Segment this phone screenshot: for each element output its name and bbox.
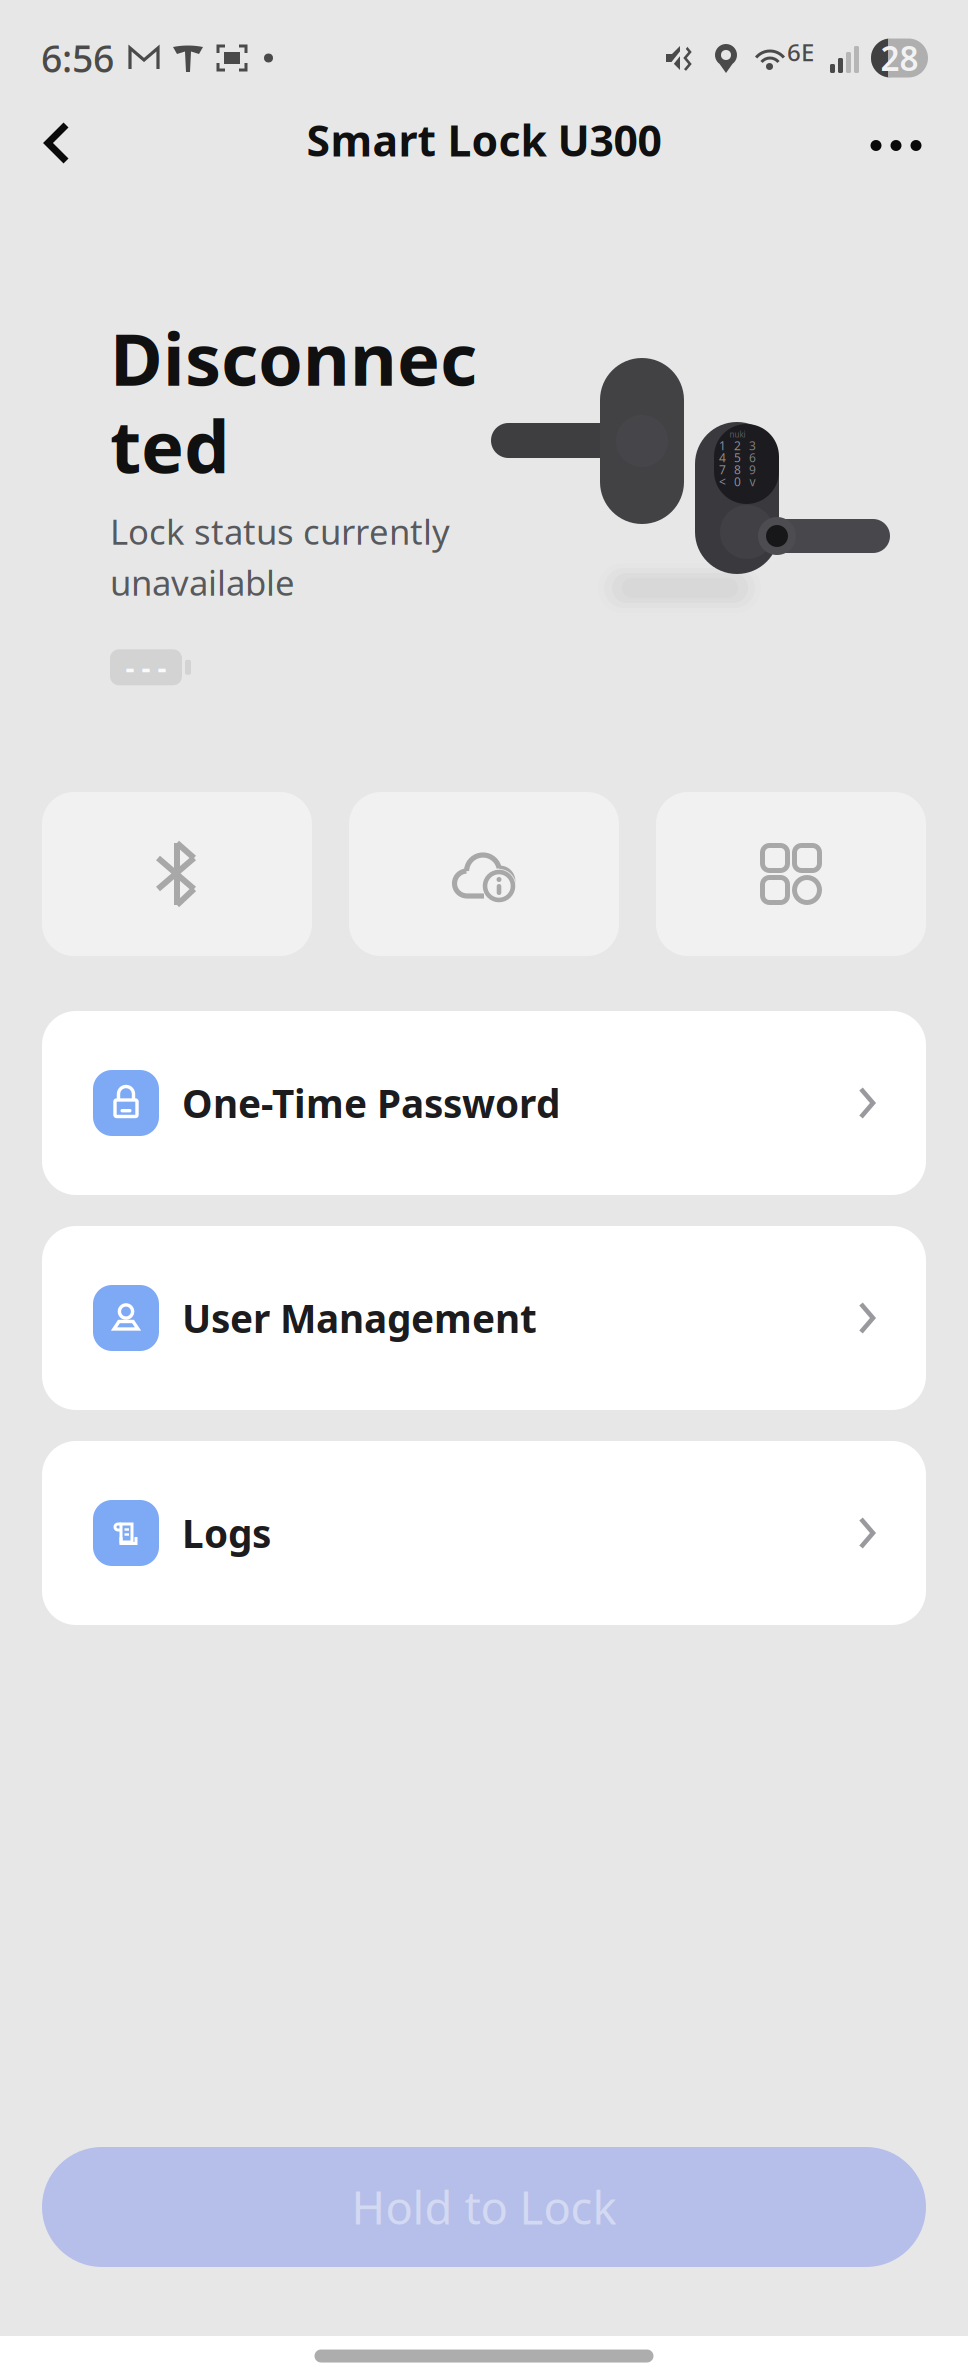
staticText: Hold to Lock: [351, 2177, 616, 2237]
staticText: 6:56: [41, 33, 114, 83]
staticText: 5: [734, 450, 741, 466]
staticText: Lock status currently: [110, 508, 450, 554]
button[interactable]: Cloud status: [349, 792, 619, 956]
staticText: <: [719, 474, 726, 490]
staticText: 8: [734, 462, 741, 478]
staticText: 2: [734, 438, 741, 454]
staticText: nuki: [729, 429, 745, 440]
staticText: - - -: [125, 649, 166, 686]
staticText: Smart Lock U300: [306, 112, 661, 168]
button[interactable]: Back: [21, 97, 93, 183]
button[interactable]: Hold to Lock: [42, 2147, 926, 2267]
staticText: 4: [719, 450, 726, 466]
staticText: User Management: [182, 1292, 537, 1344]
button[interactable]: User Management: [42, 1226, 926, 1410]
staticText: v: [749, 474, 755, 490]
staticText: ted: [110, 398, 230, 493]
staticText: Disconnec: [110, 310, 477, 406]
staticText: One-Time Password: [182, 1077, 560, 1129]
button[interactable]: More options: [852, 94, 940, 185]
staticText: 28: [880, 36, 918, 80]
staticText: 1: [719, 438, 726, 454]
staticText: 3: [749, 438, 756, 454]
staticText: Logs: [182, 1507, 271, 1559]
button[interactable]: More features: [656, 792, 926, 956]
button[interactable]: One-Time Password: [42, 1011, 926, 1195]
staticText: unavailable: [110, 559, 295, 605]
staticText: 7: [719, 462, 726, 478]
staticText: 0: [734, 474, 741, 490]
button[interactable]: Logs: [42, 1441, 926, 1625]
staticText: 6E: [787, 36, 814, 68]
button[interactable]: Bluetooth: [42, 792, 312, 956]
staticText: 6: [749, 450, 756, 466]
staticText: 9: [749, 462, 756, 478]
